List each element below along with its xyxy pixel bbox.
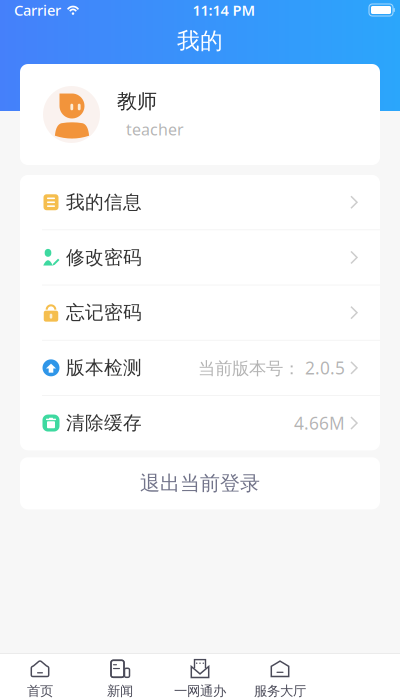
staticText: 忘记密码 (66, 301, 142, 324)
staticText: 服务大厅 (254, 683, 306, 699)
button[interactable]: 一网通办 (160, 654, 240, 700)
staticText: 修改密码 (66, 246, 142, 269)
staticText: 11:14 PM (192, 0, 255, 20)
staticText: 一网通办 (174, 683, 226, 699)
button[interactable]: 版本检测 (20, 341, 380, 395)
staticText: 教师 (117, 89, 157, 114)
staticText: 4.66M (294, 411, 345, 434)
staticText: 版本检测 (66, 356, 142, 379)
button[interactable]: 新闻 (80, 654, 160, 700)
button[interactable]: 修改密码 (20, 230, 380, 285)
staticText: 我的信息 (66, 191, 142, 214)
staticText: 我的 (177, 27, 223, 55)
staticText: 新闻 (107, 683, 133, 699)
staticText: 退出当前登录 (140, 471, 260, 496)
staticText: 清除缓存 (66, 412, 142, 434)
staticText: 首页 (27, 683, 53, 699)
button[interactable]: 清除缓存 (20, 396, 380, 450)
button[interactable]: 忘记密码 (20, 285, 380, 340)
staticText: Carrier (14, 0, 61, 20)
staticText: 当前版本号： 2.0.5 (198, 356, 345, 379)
staticText: teacher (126, 119, 184, 140)
button[interactable]: 退出当前登录 (20, 457, 380, 509)
button[interactable]: 首页 (0, 654, 80, 700)
button[interactable]: 服务大厅 (240, 654, 320, 700)
button[interactable]: 我的信息 (20, 175, 380, 229)
